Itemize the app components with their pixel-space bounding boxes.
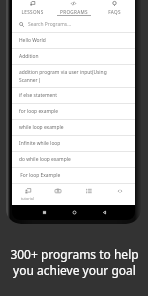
staticText: PROGRAMS — [60, 9, 88, 15]
button[interactable]: for loop example — [12, 104, 135, 119]
staticText: while loop example — [19, 124, 64, 131]
staticText: LESSONS — [21, 9, 44, 15]
button[interactable]: Topics — [73, 184, 104, 205]
staticText: 300+ programs to help — [10, 246, 139, 262]
button[interactable]: Infinite while loop — [12, 136, 135, 151]
button[interactable]: Programs — [104, 184, 135, 205]
button[interactable]: Search Programs... — [12, 16, 135, 32]
staticText: Infinite while loop — [19, 140, 61, 147]
staticText: do while loop example — [19, 156, 71, 163]
button[interactable]: Back — [89, 205, 119, 220]
button[interactable]: addition program via user input(Using Sc… — [12, 65, 135, 87]
button[interactable]: do while loop example — [12, 152, 135, 167]
staticText: FAQS — [108, 9, 121, 15]
button[interactable]: Home — [59, 205, 89, 220]
button[interactable]: Recents — [29, 205, 59, 220]
button[interactable]: Hello World — [12, 33, 135, 48]
staticText: for loop example — [19, 108, 58, 115]
staticText: addition program via user input(Using Sc… — [19, 69, 107, 83]
staticText: For loop Example — [19, 172, 61, 179]
button[interactable]: For loop Example — [12, 168, 135, 183]
button[interactable]: FAQS — [94, 0, 135, 16]
staticText: Hello World — [19, 37, 46, 44]
staticText: Search Programs... — [28, 21, 72, 28]
button[interactable]: LESSONS — [12, 0, 53, 16]
button[interactable]: if else statement — [12, 88, 135, 103]
staticText: tutorial — [21, 196, 34, 201]
staticText: you achieve your goal — [13, 262, 136, 278]
button[interactable]: Tutorial — [12, 184, 42, 205]
button[interactable]: Video — [42, 184, 73, 205]
button[interactable]: PROGRAMS — [53, 0, 94, 16]
button[interactable]: Addition — [12, 49, 135, 64]
button[interactable]: while loop example — [12, 120, 135, 135]
staticText: if else statement — [19, 92, 58, 99]
staticText: Addition — [19, 53, 39, 60]
